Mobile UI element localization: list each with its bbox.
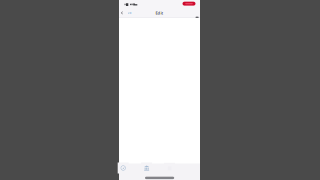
button[interactable]: List [119,8,135,17]
button[interactable]: Library [141,162,152,173]
staticText: List [128,11,132,15]
staticText: Edit [155,10,163,15]
button[interactable]: Explore [118,162,129,173]
